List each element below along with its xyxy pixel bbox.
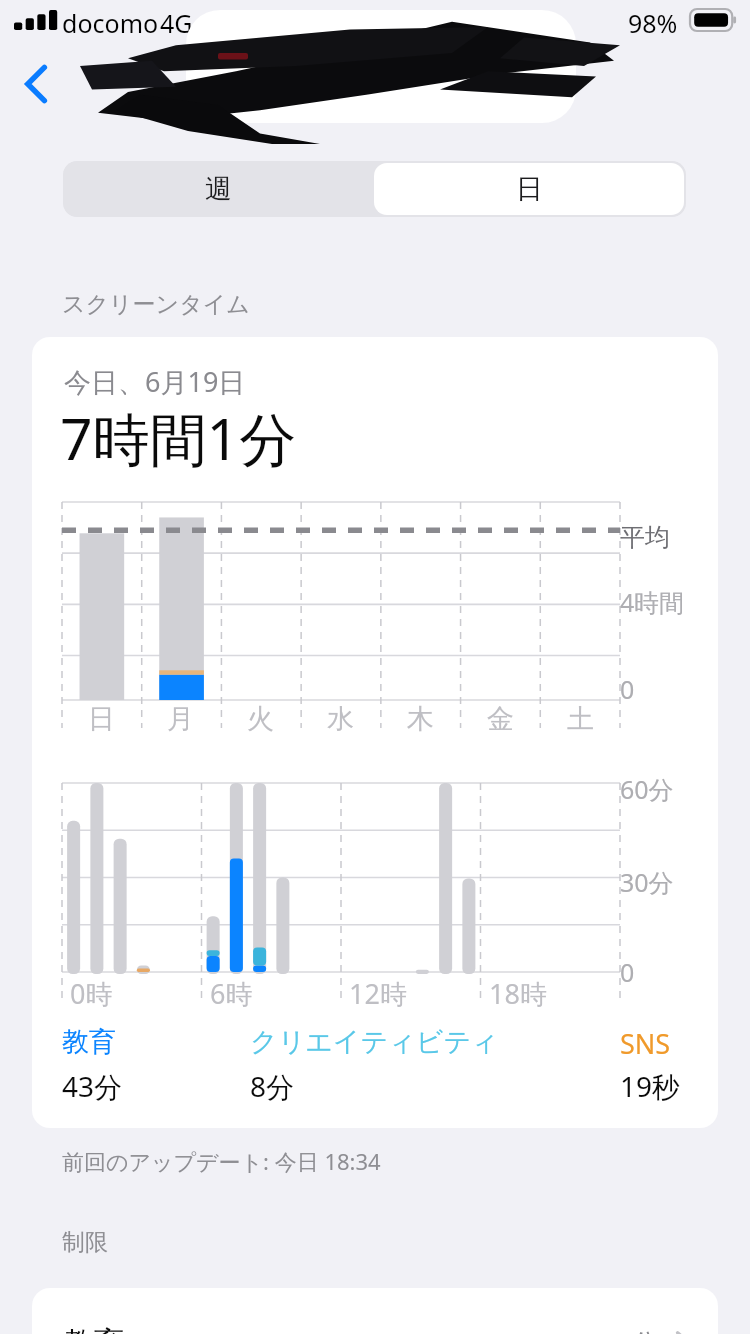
staticText: 30分 <box>620 865 674 899</box>
staticText: 4時間 <box>620 585 685 619</box>
button[interactable] <box>374 161 686 217</box>
staticText: SNS <box>620 1025 671 1062</box>
staticText: 教育 <box>64 1324 124 1334</box>
staticText: 水 <box>327 702 354 736</box>
button[interactable]: 教育 <box>32 1288 718 1334</box>
staticText: 火 <box>247 702 274 736</box>
button[interactable]: 日 <box>374 163 684 215</box>
staticText: スクリーンタイム <box>62 290 250 319</box>
staticText: 43分 <box>62 1067 123 1105</box>
staticText: 制限 <box>62 1228 108 1257</box>
staticText: 木 <box>407 702 434 736</box>
staticText: docomo <box>62 6 159 40</box>
staticText: 7時間1分 <box>60 399 297 477</box>
button[interactable]: 今日、6月19日 <box>32 337 718 1128</box>
staticText: 18時 <box>489 975 547 1012</box>
staticText: 0時 <box>70 975 113 1012</box>
staticText: 土 <box>567 702 594 736</box>
staticText: 8分 <box>250 1067 295 1105</box>
staticText: 平均 <box>620 522 670 553</box>
staticText: 4G <box>160 6 193 40</box>
staticText: 1分 <box>615 1324 660 1334</box>
staticText: 月 <box>167 702 194 736</box>
staticText: 12時 <box>349 975 407 1012</box>
staticText: 日 <box>88 702 115 736</box>
button[interactable]: 週 <box>63 161 374 217</box>
staticText: 金 <box>487 702 514 736</box>
staticText: 0 <box>620 955 635 989</box>
staticText: クリエイティビティ <box>250 1025 499 1059</box>
staticText: 日 <box>516 172 543 206</box>
staticText: 週 <box>205 172 232 206</box>
button[interactable]: Back <box>6 52 70 116</box>
staticText: 教育 <box>62 1025 116 1059</box>
staticText: 今日、6月19日 <box>64 363 246 400</box>
staticText: 98% <box>628 6 678 40</box>
staticText: 前回のアップデート: 今日 18:34 <box>62 1146 381 1176</box>
staticText: 19秒 <box>620 1067 681 1105</box>
staticText: 6時 <box>210 975 253 1012</box>
staticText: 0 <box>620 672 635 706</box>
staticText: 60分 <box>620 772 674 806</box>
